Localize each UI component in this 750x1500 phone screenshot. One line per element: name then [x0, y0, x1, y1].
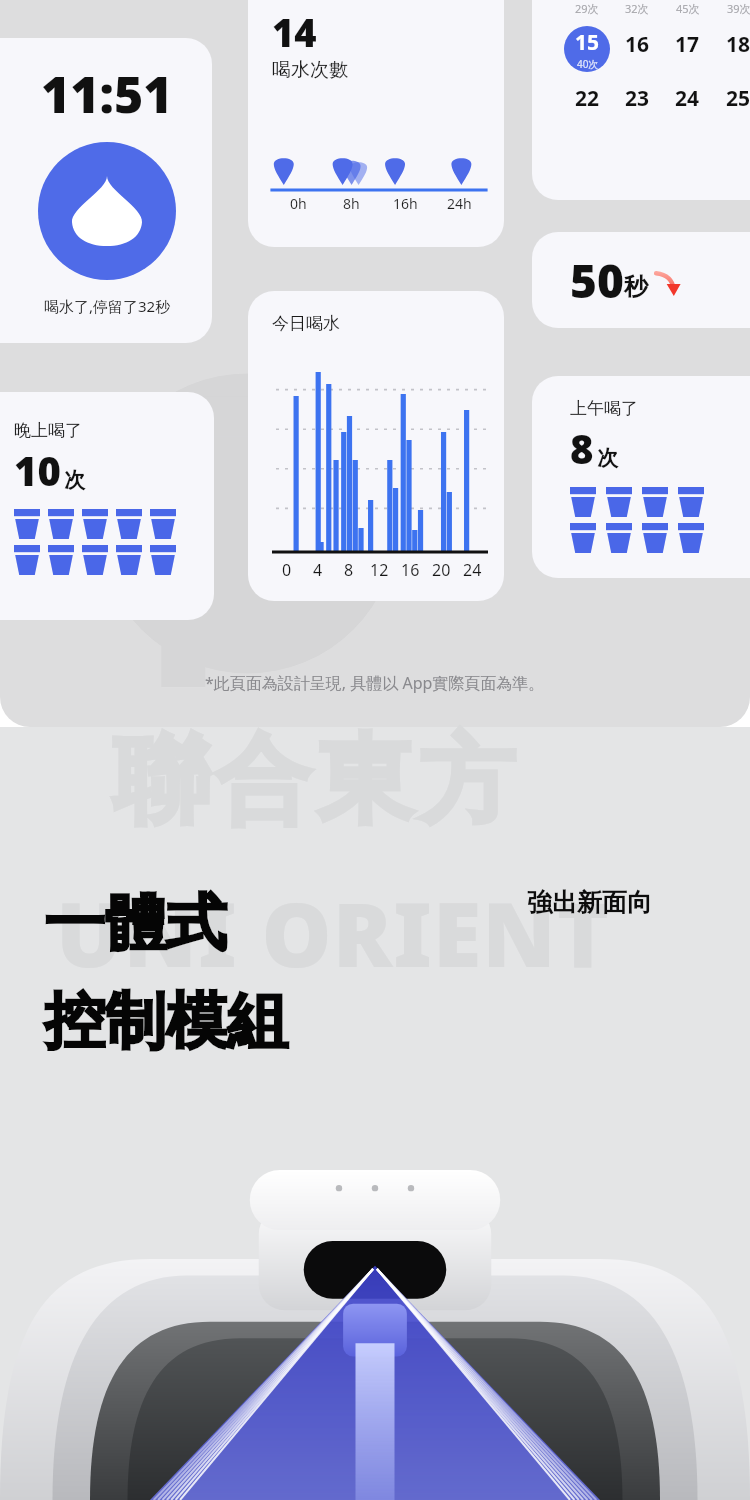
- staticText: 次: [64, 467, 85, 493]
- button[interactable]: 上午喝了: [532, 376, 750, 578]
- staticText: 25: [726, 84, 750, 113]
- other: Decrease: [650, 263, 684, 297]
- staticText: 喝水了,停留了32秒: [44, 296, 171, 316]
- staticText: 聯合東方: [110, 721, 518, 842]
- staticText: 上午喝了: [570, 398, 638, 419]
- staticText: 4: [313, 559, 323, 581]
- staticText: 11:51: [41, 60, 173, 128]
- staticText: 喝水次數: [272, 58, 348, 82]
- staticText: 23: [625, 84, 650, 113]
- button[interactable]: 14: [248, 0, 504, 247]
- staticText: 8h: [343, 194, 360, 213]
- staticText: 10: [14, 443, 61, 497]
- staticText: 16: [401, 559, 420, 581]
- button[interactable]: 11:51: [0, 38, 212, 343]
- staticText: 18: [726, 30, 750, 59]
- staticText: 一體式: [44, 885, 227, 962]
- button[interactable]: 50: [532, 232, 750, 328]
- staticText: 45次: [676, 1, 700, 16]
- staticText: 16h: [393, 194, 418, 213]
- staticText: 24h: [447, 194, 472, 213]
- staticText: 22: [575, 84, 600, 113]
- staticText: 17: [675, 30, 700, 59]
- staticText: UNI ORIENT: [56, 873, 610, 993]
- staticText: 8: [570, 421, 594, 475]
- button[interactable]: 1: [532, 0, 750, 200]
- staticText: 20: [432, 559, 451, 581]
- staticText: 16: [625, 30, 650, 59]
- staticText: 12: [370, 559, 389, 581]
- staticText: 控制模組: [44, 983, 288, 1060]
- staticText: 29次: [575, 1, 599, 16]
- staticText: 32次: [625, 1, 649, 16]
- button[interactable]: 晚上喝了: [0, 392, 214, 620]
- staticText: 今日喝水: [272, 313, 340, 334]
- button[interactable]: 15: [564, 26, 610, 72]
- staticText: *此頁面為設計呈現, 具體以 App實際頁面為準。: [205, 672, 545, 694]
- staticText: 次: [597, 445, 618, 471]
- staticText: 24: [675, 84, 700, 113]
- staticText: 50: [570, 249, 624, 312]
- staticText: 0h: [290, 194, 307, 213]
- staticText: 14: [272, 6, 317, 58]
- staticText: 秒: [624, 272, 648, 302]
- staticText: 0: [282, 559, 292, 581]
- staticText: 24: [463, 559, 482, 581]
- button[interactable]: 今日喝水: [248, 291, 504, 601]
- staticText: 強出新面向: [527, 887, 652, 918]
- staticText: 晚上喝了: [14, 420, 82, 441]
- staticText: 8: [344, 559, 354, 581]
- staticText: 15: [575, 28, 600, 57]
- staticText: 40次: [577, 57, 599, 71]
- staticText: 39次: [727, 1, 750, 16]
